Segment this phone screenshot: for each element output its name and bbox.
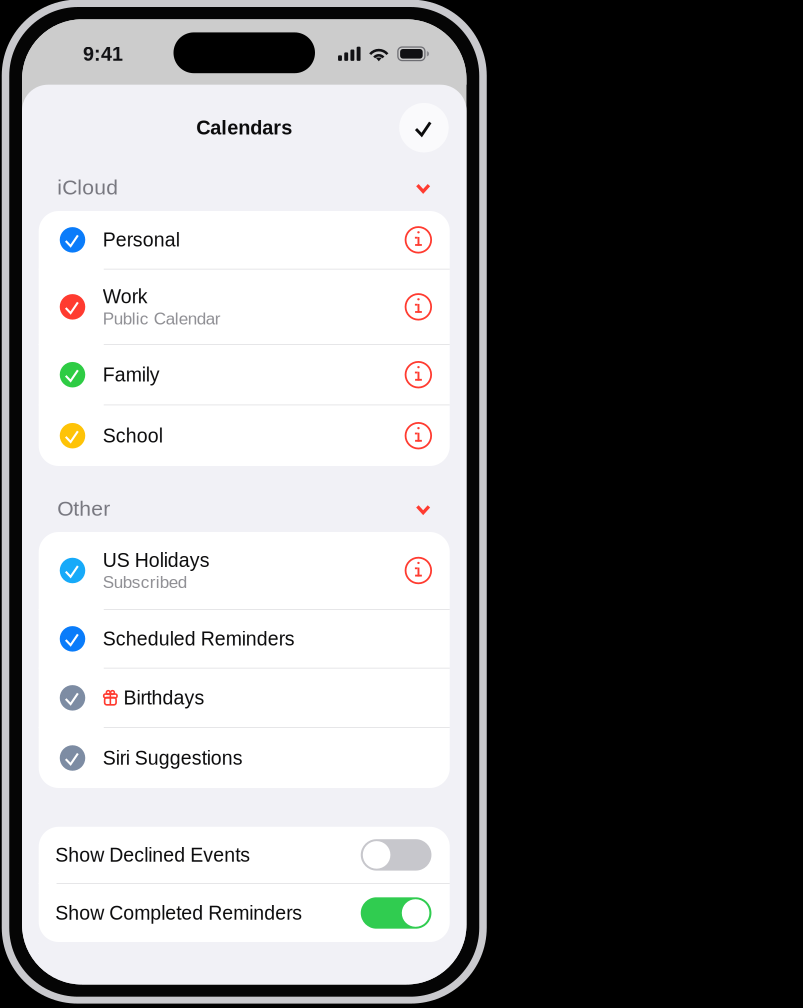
button[interactable]: Birthdays <box>39 669 450 727</box>
button[interactable]: Personal <box>39 211 450 269</box>
staticText: Calendars <box>196 117 292 139</box>
staticText: Personal <box>103 229 180 251</box>
button[interactable]: Show Declined Events <box>39 827 450 883</box>
button[interactable]: School <box>39 405 450 466</box>
staticText: Family <box>103 364 160 385</box>
button[interactable]: Scheduled Reminders <box>39 610 450 668</box>
staticText: School <box>103 425 163 446</box>
staticText: Show Completed Reminders <box>55 902 302 924</box>
staticText: US Holidays <box>103 549 210 571</box>
staticText: Work <box>103 286 148 307</box>
button[interactable]: Siri Suggestions <box>39 728 450 788</box>
staticText: Birthdays <box>123 687 204 709</box>
staticText: Show Declined Events <box>55 844 250 866</box>
button[interactable]: Done <box>399 103 449 152</box>
staticText: iCloud <box>57 175 118 199</box>
staticText: Scheduled Reminders <box>103 628 295 650</box>
staticText: 9:41 <box>83 43 123 65</box>
button[interactable]: Family <box>39 345 450 404</box>
button[interactable]: US Holidays <box>39 532 450 609</box>
button[interactable]: Collapse iCloud <box>408 174 438 200</box>
button[interactable]: Show Completed Reminders <box>39 884 450 942</box>
staticText: Subscribed <box>103 573 187 592</box>
staticText: Siri Suggestions <box>103 747 243 769</box>
staticText: Other <box>57 497 110 520</box>
button[interactable]: Collapse Other <box>408 495 438 521</box>
button[interactable]: Work <box>39 270 450 344</box>
staticText: Public Calendar <box>103 309 221 328</box>
